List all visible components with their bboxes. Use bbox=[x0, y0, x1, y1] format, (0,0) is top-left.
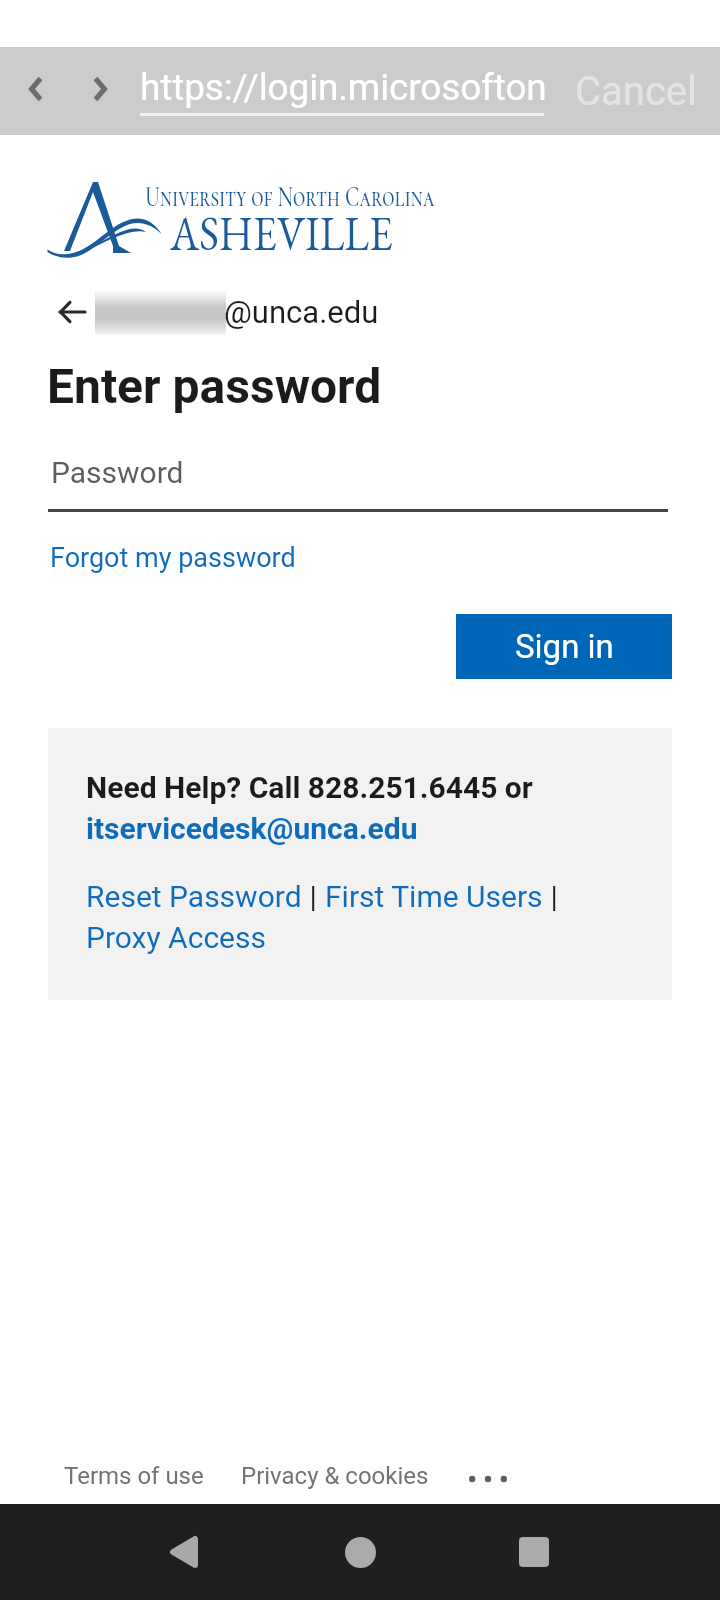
staticText: @unca.edu bbox=[224, 294, 379, 330]
button[interactable]: Reset Password bbox=[86, 879, 302, 914]
button[interactable]: Proxy Access bbox=[86, 920, 266, 955]
staticText: Sign in bbox=[515, 627, 614, 666]
staticText: Reset Password bbox=[86, 879, 302, 914]
button[interactable]: Cancel bbox=[556, 47, 716, 135]
staticText: | bbox=[302, 879, 325, 914]
staticText: First Time Users bbox=[325, 879, 543, 914]
button[interactable]: Terms of use bbox=[62, 1462, 206, 1490]
staticText: https://login.microsofton bbox=[140, 66, 547, 109]
button[interactable]: Back bbox=[8, 61, 64, 117]
staticText: | bbox=[543, 879, 558, 914]
staticText: Privacy & cookies bbox=[241, 1462, 429, 1490]
staticText: University of North Carolina bbox=[145, 180, 435, 214]
staticText: Password bbox=[51, 455, 184, 490]
button[interactable]: Back bbox=[48, 288, 96, 336]
button[interactable]: Privacy & cookies bbox=[239, 1462, 431, 1490]
button[interactable]: Sign in bbox=[456, 614, 672, 679]
button[interactable]: https://login.microsofton bbox=[140, 47, 548, 135]
staticText: ASHEVILLE bbox=[170, 202, 393, 265]
button[interactable]: More options bbox=[459, 1462, 517, 1496]
staticText: Need Help? Call 828.251.6445 or bbox=[86, 770, 533, 805]
button[interactable]: Forward bbox=[72, 61, 128, 117]
staticText: Cancel bbox=[575, 68, 697, 115]
button[interactable]: itservicedesk@unca.edu bbox=[86, 811, 418, 846]
staticText: Forgot my password bbox=[50, 542, 296, 574]
staticText: Proxy Access bbox=[86, 920, 266, 955]
staticText: itservicedesk@unca.edu bbox=[86, 811, 418, 846]
staticText: Enter password bbox=[47, 358, 382, 414]
button[interactable]: First Time Users bbox=[325, 879, 543, 914]
staticText: Terms of use bbox=[64, 1462, 204, 1490]
button[interactable]: Back bbox=[136, 1504, 232, 1600]
button[interactable]: Forgot my password bbox=[48, 542, 298, 574]
button[interactable]: Recent apps bbox=[486, 1504, 582, 1600]
button[interactable]: Home bbox=[312, 1504, 408, 1600]
